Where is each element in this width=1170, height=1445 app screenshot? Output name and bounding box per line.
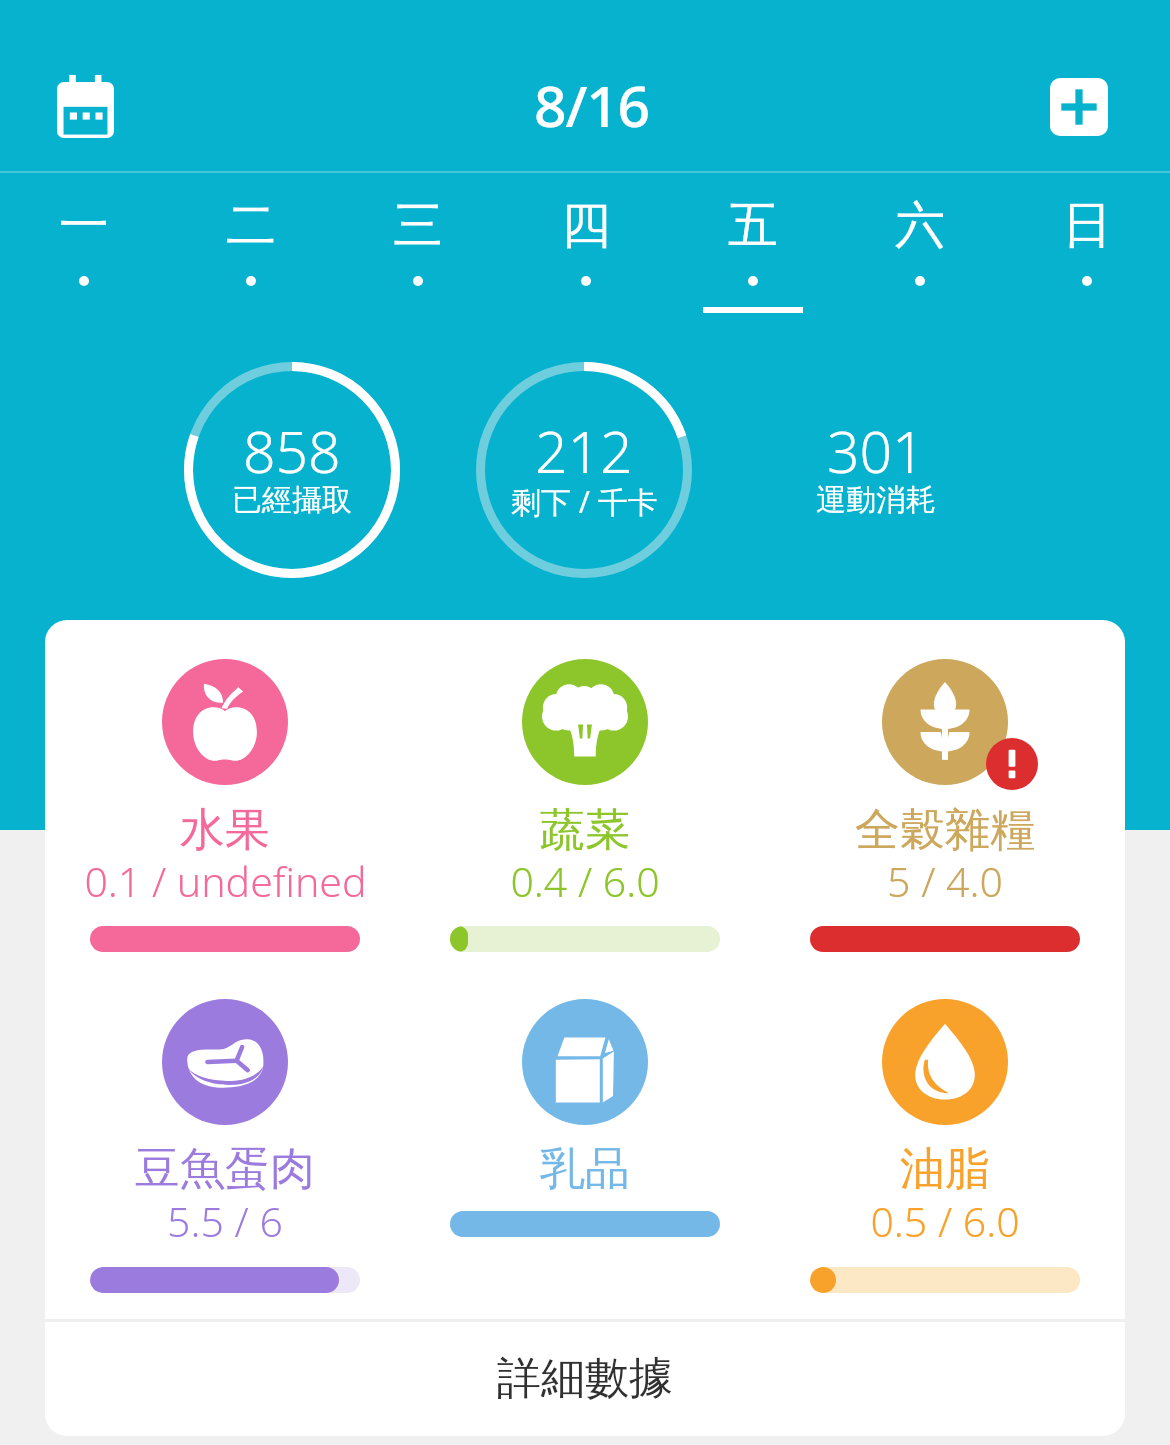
button[interactable]: 212 — [476, 362, 692, 578]
button[interactable]: 五 — [669, 175, 836, 320]
staticText: 8/16 — [534, 66, 649, 144]
button[interactable]: 858 — [184, 362, 400, 578]
staticText: 全穀雜糧 — [855, 802, 1035, 859]
staticText: 蔬菜 — [540, 802, 630, 859]
button[interactable]: 301 — [768, 362, 984, 578]
button[interactable]: 油脂 — [765, 979, 1125, 1316]
button[interactable]: 乳品 — [405, 979, 765, 1316]
staticText: 日 — [1062, 194, 1112, 257]
staticText: 三 — [393, 194, 443, 257]
button[interactable]: 水果 — [45, 639, 405, 975]
staticText: 五 — [728, 194, 778, 257]
staticText: 301 — [827, 412, 925, 490]
staticText: 858 — [243, 412, 341, 490]
staticText: 0.5 / 6.0 — [870, 1193, 1020, 1249]
button[interactable]: 六 — [836, 175, 1003, 320]
button[interactable]: 豆魚蛋肉 — [45, 979, 405, 1316]
staticText: 油脂 — [900, 1141, 990, 1198]
button[interactable]: 日 — [1003, 175, 1170, 320]
staticText: 剩下 / 千卡 — [511, 481, 658, 522]
button[interactable]: 蔬菜 — [405, 639, 765, 975]
staticText: 詳細數據 — [497, 1351, 673, 1406]
staticText: 四 — [561, 194, 611, 257]
staticText: 豆魚蛋肉 — [135, 1141, 315, 1198]
button[interactable]: Calendar — [30, 51, 141, 162]
staticText: 一 — [59, 194, 109, 257]
button[interactable]: 三 — [334, 175, 501, 320]
staticText: 乳品 — [540, 1141, 630, 1198]
button[interactable]: Add entry — [1023, 51, 1134, 162]
button[interactable]: 全穀雜糧 — [765, 639, 1125, 975]
button[interactable]: 一 — [0, 175, 167, 320]
staticText: 二 — [226, 194, 276, 257]
button[interactable]: 二 — [167, 175, 334, 320]
staticText: 212 — [535, 412, 633, 490]
button[interactable]: 詳細數據 — [45, 1320, 1125, 1436]
staticText: 5.5 / 6 — [167, 1193, 283, 1249]
staticText: 六 — [895, 194, 945, 257]
button[interactable]: 四 — [502, 175, 669, 320]
staticText: 0.1 / undefined — [84, 853, 367, 909]
staticText: 0.4 / 6.0 — [510, 853, 660, 909]
staticText: 已經攝取 — [232, 481, 352, 519]
staticText: 運動消耗 — [816, 481, 936, 519]
staticText: 5 / 4.0 — [887, 853, 1003, 909]
staticText: 水果 — [180, 802, 270, 859]
